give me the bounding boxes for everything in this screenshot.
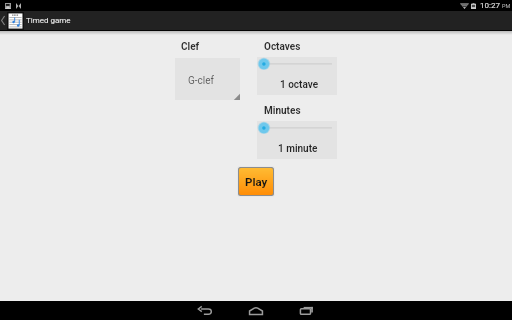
staticText: Clef (181, 41, 200, 53)
button[interactable]: Navigate up (0, 11, 24, 30)
button[interactable]: Home (231, 301, 281, 320)
staticText: Octaves (264, 41, 301, 53)
staticText: Timed game (26, 16, 71, 25)
staticText: 1 minute (278, 143, 318, 155)
staticText: Minutes (264, 105, 301, 117)
button[interactable]: Recent apps (282, 301, 332, 320)
staticText: Play (245, 175, 268, 188)
staticText: G-clef (188, 75, 215, 87)
button[interactable]: G-clef (175, 58, 240, 100)
button[interactable]: Adjust value (257, 57, 337, 95)
staticText: PM (502, 3, 511, 9)
button[interactable]: Play (239, 168, 273, 195)
button[interactable]: Back (180, 301, 230, 320)
button[interactable]: Adjust value (257, 121, 337, 159)
staticText: 1 octave (280, 79, 319, 91)
staticText: 10:27 (480, 1, 500, 10)
